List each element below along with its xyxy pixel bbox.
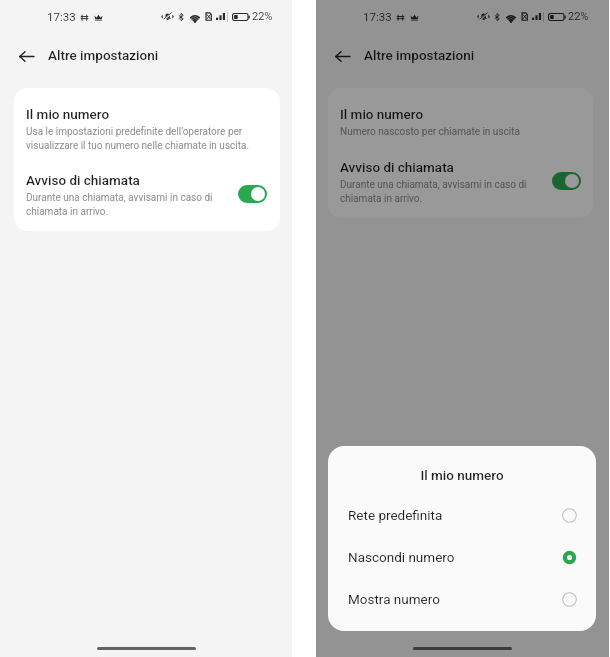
- staticText: Avviso di chiamata: [26, 172, 140, 188]
- staticText: 22%: [252, 10, 273, 23]
- staticText: Altre impostazioni: [364, 47, 475, 63]
- staticText: 17:33: [47, 10, 76, 23]
- staticText: Durante una chiamata, avvisami in caso d…: [340, 179, 540, 204]
- button[interactable]: Rete predefinita: [328, 494, 596, 536]
- staticText: Nascondi numero: [348, 549, 455, 565]
- staticText: Avviso di chiamata: [340, 159, 454, 175]
- staticText: Il mio numero: [328, 467, 596, 483]
- staticText: Durante una chiamata, avvisami in caso d…: [26, 192, 226, 217]
- button[interactable]: Avviso di chiamata: [328, 149, 593, 218]
- staticText: Il mio numero: [26, 106, 110, 122]
- button[interactable]: Nascondi numero: [328, 536, 596, 578]
- staticText: Il mio numero: [340, 106, 424, 122]
- button[interactable]: Il mio numero: [14, 88, 280, 162]
- button[interactable]: Il mio numero: [328, 88, 593, 149]
- button[interactable]: Avviso di chiamata: [14, 162, 280, 231]
- staticText: Mostra numero: [348, 591, 440, 607]
- staticText: Numero nascosto per chiamate in uscita: [340, 126, 570, 138]
- button[interactable]: Mostra numero: [328, 578, 596, 620]
- button[interactable]: Back: [12, 42, 40, 70]
- button[interactable]: Avviso di chiamata: [552, 172, 581, 190]
- staticText: 17:33: [363, 10, 392, 23]
- staticText: Altre impostazioni: [48, 47, 159, 63]
- staticText: Rete predefinita: [348, 507, 443, 523]
- staticText: 22%: [568, 10, 589, 23]
- button[interactable]: Back: [328, 42, 356, 70]
- button[interactable]: Avviso di chiamata: [238, 185, 267, 203]
- staticText: Usa le impostazioni predefinite dell'ope…: [26, 126, 256, 151]
